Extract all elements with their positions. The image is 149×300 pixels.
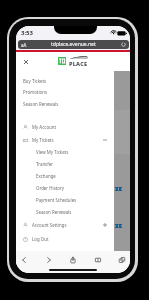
staticText: tdplace.evenue.net xyxy=(51,41,96,48)
button[interactable]: Exchange xyxy=(16,170,114,182)
staticText: Buy Tickets xyxy=(23,78,47,84)
button[interactable]: Season Renewals xyxy=(16,98,114,110)
staticText: View My Tickets xyxy=(36,149,69,155)
staticText: Season Renewals xyxy=(36,209,72,215)
staticText: Log Out xyxy=(32,236,49,242)
staticText: PLACE xyxy=(69,60,88,67)
button[interactable]: Order History xyxy=(16,182,114,194)
button[interactable]: My Tickets xyxy=(16,133,114,147)
button[interactable]: Bookmarks xyxy=(90,252,106,268)
staticText: 3:53 xyxy=(21,29,33,37)
staticText: aA xyxy=(21,42,27,48)
button[interactable]: View My Tickets xyxy=(16,146,114,158)
button[interactable]: Promotions xyxy=(16,86,114,98)
staticText: Exchange xyxy=(36,173,56,179)
staticText: Promotions xyxy=(23,89,47,95)
button[interactable]: Back xyxy=(16,252,32,268)
button[interactable]: tdplace.evenue.net xyxy=(18,40,129,49)
staticText: Payment Schedules xyxy=(36,197,77,203)
button[interactable]: Account Settings xyxy=(16,218,114,232)
button[interactable]: Forward xyxy=(41,252,57,268)
staticText: My Tickets xyxy=(32,137,54,143)
staticText: Season Renewals xyxy=(23,101,59,107)
button[interactable]: Season Renewals xyxy=(16,206,114,218)
staticText: My Account xyxy=(32,124,57,130)
button[interactable]: Transfer xyxy=(16,158,114,170)
button[interactable]: Log Out xyxy=(16,232,114,246)
staticText: Account Settings xyxy=(32,222,67,228)
staticText: Order History xyxy=(36,185,65,191)
button[interactable]: Close menu xyxy=(20,56,31,67)
button[interactable]: Share xyxy=(65,252,81,268)
button[interactable]: Tabs xyxy=(114,252,130,268)
button[interactable]: Buy Tickets xyxy=(16,75,114,87)
button[interactable]: My Account xyxy=(16,120,114,134)
button[interactable]: Payment Schedules xyxy=(16,194,114,206)
staticText: Transfer xyxy=(36,161,54,167)
